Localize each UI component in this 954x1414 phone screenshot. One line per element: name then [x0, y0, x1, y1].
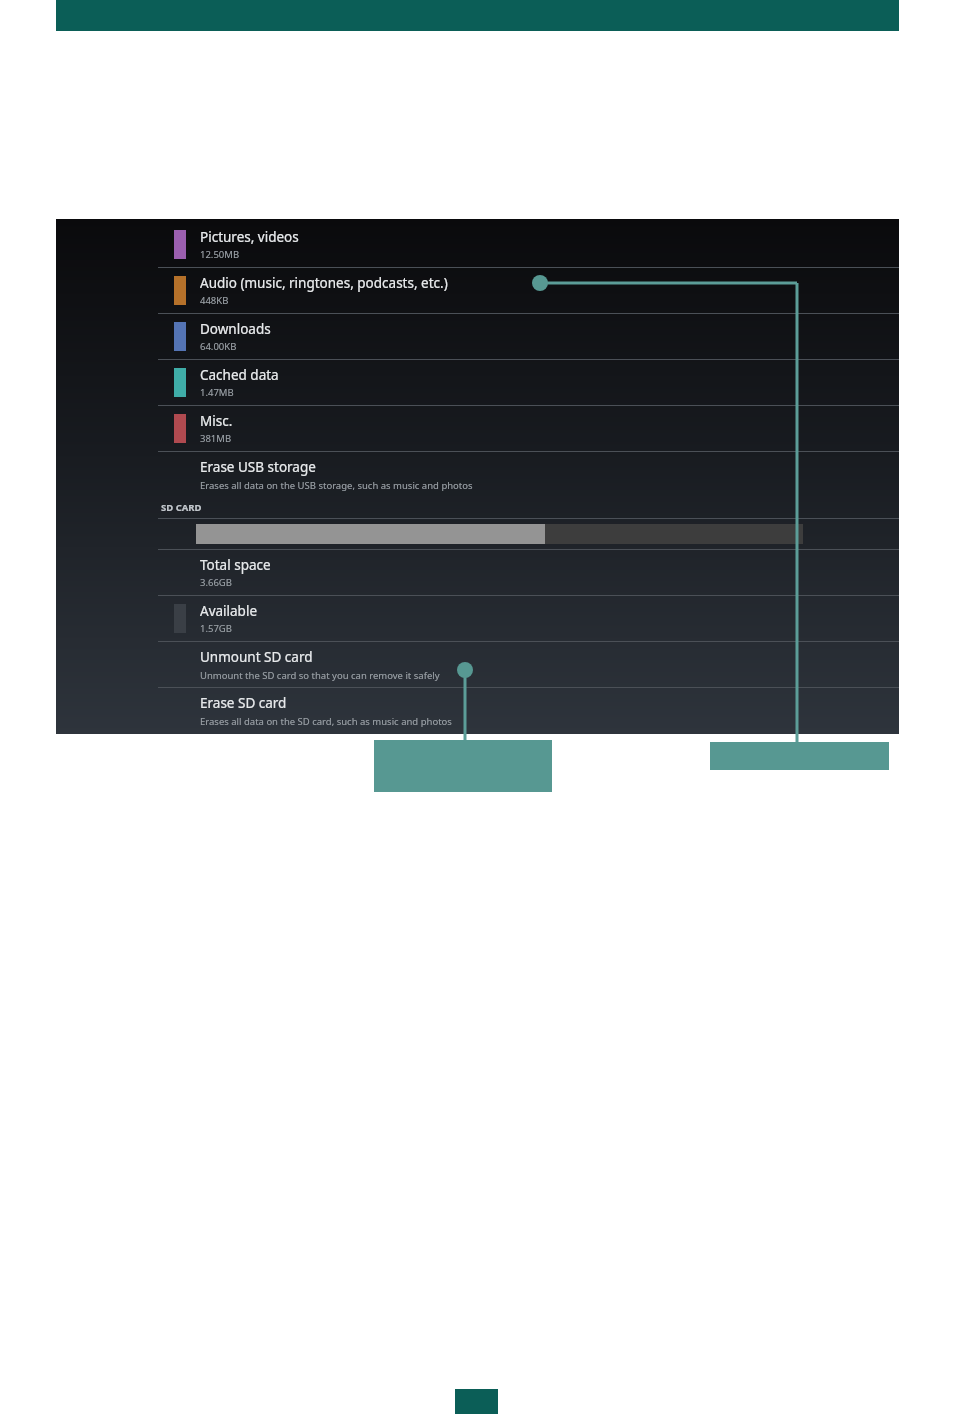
staticText: 381MB	[200, 432, 232, 445]
staticText: Erase USB storage	[200, 458, 316, 476]
staticText: Unmount the SD card so that you can remo…	[200, 669, 440, 682]
staticText: 3.66GB	[200, 576, 232, 589]
button[interactable]: Total space	[56, 550, 899, 595]
staticText: Erase SD card	[200, 694, 287, 712]
staticText: Erases all data on the SD card, such as …	[200, 715, 452, 728]
staticText: 64.00KB	[200, 340, 237, 353]
staticText: Available	[200, 602, 257, 620]
staticText: Cached data	[200, 366, 279, 384]
staticText: Downloads	[200, 320, 271, 338]
button[interactable]: Downloads	[56, 314, 899, 359]
button[interactable]: Cached data	[56, 360, 899, 405]
button[interactable]: Available	[56, 596, 899, 641]
button[interactable]: Erase USB storage	[56, 452, 899, 497]
staticText: Pictures, videos	[200, 228, 299, 246]
button[interactable]: Audio (music, ringtones, podcasts, etc.)	[56, 268, 899, 313]
button[interactable]: Pictures, videos	[56, 222, 899, 267]
button[interactable]: Misc.	[56, 406, 899, 451]
staticText: Erases all data on the USB storage, such…	[200, 479, 473, 492]
staticText: 1.57GB	[200, 622, 232, 635]
staticText: Misc.	[200, 412, 233, 430]
staticText: 1.47MB	[200, 386, 234, 399]
button[interactable]: Unmount SD card	[56, 642, 899, 687]
staticText: Unmount SD card	[200, 648, 313, 666]
button[interactable]: Erase SD card	[56, 688, 899, 733]
staticText: Audio (music, ringtones, podcasts, etc.)	[200, 274, 448, 292]
staticText: 448KB	[200, 294, 229, 307]
staticText: SD CARD	[161, 501, 202, 514]
staticText: 12.50MB	[200, 248, 240, 261]
staticText: Total space	[200, 556, 271, 574]
